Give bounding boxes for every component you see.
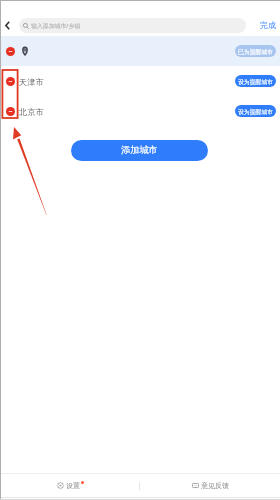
staticText: 设置 [66, 481, 80, 490]
staticText: 已为提醒城市 [238, 48, 273, 55]
button[interactable]: 已为提醒城市 [235, 45, 276, 57]
staticText: 北京市 [19, 107, 44, 117]
button[interactable]: Back [0, 9, 19, 41]
button[interactable]: Remove city [5, 106, 15, 116]
button[interactable]: 添加城市 [71, 140, 208, 161]
button[interactable]: 输入添加城市/乡镇 [19, 18, 246, 33]
staticText: 完成 [260, 20, 276, 30]
button[interactable]: Remove city [5, 46, 15, 56]
button[interactable]: Remove city [0, 66, 280, 96]
staticText: 意见反馈 [201, 481, 229, 490]
staticText: 设为提醒城市 [238, 108, 273, 115]
button[interactable]: 意见反馈 [140, 474, 280, 497]
button[interactable]: Remove city [0, 36, 280, 66]
staticText: 添加城市 [121, 144, 158, 156]
staticText: 输入添加城市/乡镇 [31, 22, 81, 30]
button[interactable]: Remove city [5, 76, 15, 86]
button[interactable]: Remove city [0, 96, 280, 126]
button[interactable]: 完成 [246, 9, 280, 41]
button[interactable]: 设置 [0, 474, 139, 497]
button[interactable]: 设为提醒城市 [235, 75, 276, 87]
staticText: 天津市 [19, 77, 44, 87]
staticText: 设为提醒城市 [238, 78, 273, 85]
button[interactable]: 设为提醒城市 [235, 105, 276, 117]
